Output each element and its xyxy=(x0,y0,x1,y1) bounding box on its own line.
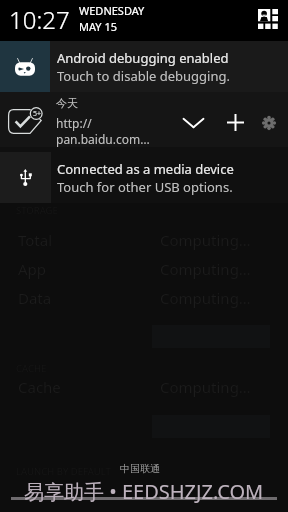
staticText: Android debugging enabled xyxy=(57,49,229,67)
staticText: 5+ xyxy=(33,109,42,119)
staticText: MAY 15 xyxy=(79,19,118,34)
button[interactable]: Settings xyxy=(251,106,287,139)
staticText: Touch to disable debugging. xyxy=(57,67,230,85)
staticText: Computing… xyxy=(160,377,251,397)
button[interactable]: Add xyxy=(217,106,253,139)
button[interactable]: Connected as a media device xyxy=(0,147,288,203)
staticText: Total xyxy=(18,230,53,250)
button[interactable]: Expand xyxy=(175,106,211,139)
staticText: App xyxy=(18,259,47,279)
staticText: 今天 xyxy=(56,96,78,110)
button[interactable]: 5+ xyxy=(0,92,288,147)
button[interactable]: Quick settings xyxy=(251,2,285,36)
staticText: http:// xyxy=(56,115,92,131)
staticText: Data xyxy=(18,288,52,308)
staticText: Cache xyxy=(18,377,61,397)
staticText: Touch for other USB options. xyxy=(57,178,233,196)
staticText: Computing… xyxy=(160,288,251,308)
staticText: Computing… xyxy=(160,230,251,250)
staticText: 10:27 xyxy=(9,3,70,36)
staticText: 易享助手 • EEDSHZJZ.COM xyxy=(24,478,264,505)
staticText: Connected as a media device xyxy=(57,160,234,178)
staticText: 中国联通 xyxy=(120,462,160,475)
staticText: WEDNESDAY xyxy=(79,3,145,18)
staticText: pan.baidu.com… xyxy=(56,131,150,147)
button[interactable]: Android debugging enabled xyxy=(0,41,288,92)
staticText: Computing… xyxy=(160,259,251,279)
